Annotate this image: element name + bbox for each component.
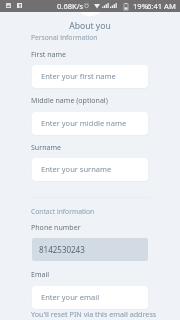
button[interactable]: Enter your middle name [32, 112, 148, 135]
staticText: Enter your email [41, 292, 100, 302]
staticText: Enter your surname [41, 164, 112, 174]
button[interactable]: Enter your surname [32, 158, 148, 181]
button[interactable]: Enter your first name [32, 65, 148, 88]
staticText: About you [0, 20, 180, 32]
staticText: Phone number [31, 222, 81, 232]
staticText: Surname [31, 142, 62, 152]
staticText: 6:41 AM [147, 1, 176, 11]
other: Photo notification [6, 3, 11, 8]
staticText: Personal information [31, 33, 98, 42]
staticText: Middle name (optional) [31, 95, 108, 105]
staticText: Enter your first name [41, 71, 116, 81]
staticText: First name [31, 49, 67, 59]
staticText: Enter your middle name [41, 118, 127, 128]
staticText: 19% [133, 1, 148, 11]
other: Facebook notification [17, 3, 22, 8]
staticText: Email [31, 269, 50, 279]
staticText: You'll reset PIN via this email address [31, 309, 157, 319]
staticText: 0.68K/s [57, 1, 84, 11]
staticText: 8142530243 [39, 244, 85, 255]
staticText: Contact information [31, 207, 95, 216]
button[interactable]: 8142530243 [32, 238, 148, 261]
button[interactable]: Enter your email [32, 286, 148, 309]
